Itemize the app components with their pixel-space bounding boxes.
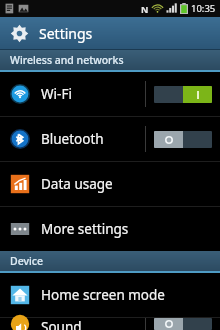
- staticText: Wi-Fi: [41, 85, 72, 103]
- staticText: More settings: [41, 220, 129, 238]
- staticText: Device: [10, 254, 44, 268]
- staticText: Bluetooth: [41, 130, 104, 148]
- button[interactable]: More settings: [0, 207, 220, 251]
- button[interactable]: Home screen mode: [0, 273, 220, 317]
- staticText: Wireless and networks: [10, 53, 124, 67]
- button[interactable]: Data usage: [0, 162, 220, 206]
- button[interactable]: Bluetooth: [0, 117, 220, 161]
- staticText: 10:35: [191, 2, 216, 15]
- button[interactable]: Turn on: [154, 131, 212, 148]
- button[interactable]: Turn off: [154, 86, 212, 103]
- button[interactable]: Sound: [0, 318, 220, 330]
- staticText: Sound: [41, 318, 82, 330]
- staticText: N: [141, 3, 149, 15]
- staticText: Settings: [39, 24, 93, 43]
- staticText: Home screen mode: [41, 286, 165, 304]
- button[interactable]: Turn on: [154, 318, 212, 330]
- staticText: Data usage: [41, 175, 113, 193]
- button[interactable]: Wi-Fi: [0, 72, 220, 116]
